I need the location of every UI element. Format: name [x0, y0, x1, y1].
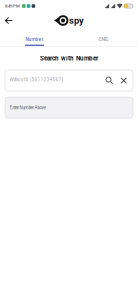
staticText: CNIC: [98, 36, 108, 42]
button[interactable]: CNIC: [69, 29, 138, 46]
staticText: spy: [69, 15, 84, 26]
button[interactable]: Number: [0, 29, 69, 46]
button[interactable]: Back: [0, 13, 17, 27]
staticText: Enter Number Above: [9, 105, 45, 110]
button[interactable]: Without 0 (3011234567): [0, 70, 138, 91]
staticText: Number: [25, 36, 43, 42]
staticText: 8:49 PM: [5, 3, 20, 8]
staticText: Search with Number: [40, 55, 98, 62]
staticText: Without 0 (3011234567): [9, 77, 63, 82]
